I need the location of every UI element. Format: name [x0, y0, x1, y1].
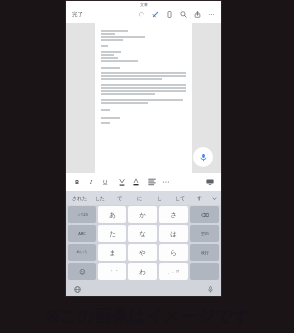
staticText: あいう	[76, 250, 88, 255]
button[interactable]: に	[130, 191, 150, 205]
button[interactable]: した	[90, 191, 110, 205]
staticText: 文書	[140, 2, 148, 7]
staticText: ABC	[78, 231, 86, 236]
button[interactable]: Italic	[84, 175, 98, 189]
button[interactable]: Search	[179, 10, 188, 19]
staticText: ま	[109, 249, 116, 257]
button[interactable]: ら	[159, 244, 188, 261]
button[interactable]: ま	[98, 244, 126, 261]
staticText: ☆123	[77, 212, 88, 217]
button[interactable]: Phone preview	[165, 10, 174, 19]
staticText: し	[157, 195, 163, 201]
staticText: 改行	[201, 250, 209, 255]
staticText: ゛゜	[107, 269, 118, 275]
button[interactable]: Hide keyboard	[203, 175, 217, 189]
button[interactable]: された	[69, 191, 90, 205]
staticText: な	[139, 230, 146, 238]
staticText: I	[90, 178, 92, 186]
button[interactable]: や	[128, 244, 157, 261]
button[interactable]: 空白	[190, 225, 219, 242]
button[interactable]: ☆123	[68, 206, 96, 223]
button[interactable]: わ	[128, 263, 157, 280]
button[interactable]: Text color	[115, 175, 129, 189]
button[interactable]: Voice typing	[193, 147, 213, 167]
button[interactable]: Format paint	[151, 10, 160, 19]
button[interactable]: Align	[145, 175, 159, 189]
button[interactable]: More options	[207, 10, 216, 19]
button[interactable]: Voice input	[205, 284, 215, 294]
staticText: で	[117, 195, 123, 201]
button[interactable]: Change language	[72, 284, 82, 294]
staticText: U	[103, 178, 108, 186]
staticText: に	[137, 195, 143, 201]
button[interactable]: Undo	[137, 10, 146, 19]
button[interactable]: Highlight	[129, 175, 143, 189]
staticText: さ	[170, 211, 177, 219]
button[interactable]: して	[170, 191, 190, 205]
button[interactable]: ⌫	[190, 206, 219, 223]
staticText: か	[139, 211, 146, 219]
button[interactable]: ☺	[68, 263, 96, 280]
button[interactable]: ABC	[68, 225, 96, 242]
staticText: された	[72, 195, 88, 201]
button[interactable]: あいう	[68, 244, 96, 261]
button[interactable]: Underline	[98, 175, 112, 189]
button[interactable]: 改行	[190, 244, 219, 261]
staticText: ⌫	[201, 212, 209, 218]
staticText: 完了	[72, 11, 83, 18]
button[interactable]: あ	[98, 206, 126, 223]
button[interactable]: か	[128, 206, 157, 223]
staticText: た	[109, 230, 116, 238]
staticText: して	[175, 195, 186, 201]
button[interactable]: 完了	[71, 11, 84, 18]
button[interactable]: Share	[193, 10, 202, 19]
staticText: す	[197, 195, 203, 201]
button[interactable]: Bold	[70, 175, 84, 189]
staticText: や	[139, 249, 146, 257]
staticText: わ	[139, 268, 146, 276]
button[interactable]: し	[150, 191, 170, 205]
button[interactable]: Expand suggestions	[210, 191, 218, 205]
button[interactable]: は	[159, 225, 188, 242]
button[interactable]: す	[190, 191, 210, 205]
button[interactable]: ゛゜	[98, 263, 126, 280]
button[interactable]: 、。?!	[159, 263, 188, 280]
button[interactable]: た	[98, 225, 126, 242]
button[interactable]: で	[110, 191, 130, 205]
staticText: ら	[170, 249, 177, 257]
staticText: 空白	[201, 231, 209, 236]
button[interactable]: な	[128, 225, 157, 242]
staticText: あ	[109, 211, 116, 219]
button[interactable]: More formatting	[159, 175, 173, 189]
button[interactable]: さ	[159, 206, 188, 223]
staticText: ☺	[79, 268, 86, 275]
staticText: した	[95, 195, 106, 201]
staticText: 、。?!	[168, 269, 179, 274]
staticText: B	[75, 178, 79, 186]
staticText: は	[170, 230, 177, 238]
